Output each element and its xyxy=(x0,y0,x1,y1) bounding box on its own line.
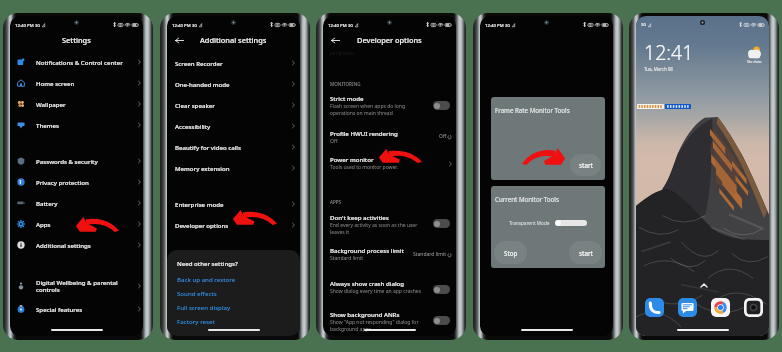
button[interactable]: Strict mode xyxy=(323,90,456,120)
staticText: Flash screen when apps do long operation… xyxy=(330,103,406,116)
staticText: Tue, March 08 xyxy=(644,66,673,72)
button[interactable]: start xyxy=(569,241,602,264)
staticText: Show "App not responding" dialog for bac… xyxy=(330,319,419,332)
staticText: Developer options xyxy=(357,35,422,45)
button[interactable]: Privacy protection xyxy=(10,171,143,192)
staticText: 12:40 PM xyxy=(328,22,347,28)
button[interactable]: Shortcut xyxy=(665,104,691,109)
staticText: Themes xyxy=(36,121,138,129)
button[interactable]: Back xyxy=(174,35,184,45)
staticText: Beautify for video calls xyxy=(175,143,292,151)
staticText: Additional settings xyxy=(200,35,267,45)
button[interactable]: Accessibility xyxy=(167,115,300,136)
button[interactable]: Themes xyxy=(10,114,143,135)
button[interactable]: Show background ANRs xyxy=(323,306,456,336)
button[interactable]: Power monitor xyxy=(323,151,456,175)
button[interactable]: Screen Recorder xyxy=(167,52,300,73)
staticText: start xyxy=(579,249,593,257)
staticText: End every activity as soon as the user l… xyxy=(330,222,418,235)
staticText: Show background ANRs xyxy=(330,310,400,318)
staticText: Developer options xyxy=(175,221,292,229)
staticText: Factory reset xyxy=(177,317,215,325)
staticText: Off xyxy=(330,138,338,145)
button[interactable]: Beautify for video calls xyxy=(167,136,300,157)
staticText: Transparent Mode xyxy=(509,220,550,226)
button[interactable]: Special features xyxy=(10,298,143,319)
staticText: peripherals xyxy=(330,50,355,56)
button[interactable]: Background process limit xyxy=(323,242,456,266)
staticText: start xyxy=(579,161,593,169)
button[interactable]: Transparent mode xyxy=(555,220,587,226)
button[interactable]: Back up and restore xyxy=(177,272,236,286)
staticText: Memory extension xyxy=(175,164,292,172)
button[interactable]: Sound effects xyxy=(177,286,217,300)
button[interactable]: Notifications & Control center xyxy=(10,51,143,72)
button[interactable]: Additional settings xyxy=(10,234,143,255)
button[interactable]: Back xyxy=(330,35,340,45)
staticText: 3G xyxy=(35,23,41,28)
staticText: 12:40 PM xyxy=(485,22,504,28)
staticText: Wallpaper xyxy=(36,100,138,108)
staticText: Enterprise mode xyxy=(175,200,292,208)
staticText: Frame Rate Monitor Tools xyxy=(495,106,570,114)
staticText: Sound effects xyxy=(177,289,217,297)
staticText: Stop xyxy=(504,249,518,257)
button[interactable]: Wallpaper xyxy=(10,93,143,114)
button[interactable]: Apps xyxy=(10,213,143,234)
button[interactable]: Show background ANRs xyxy=(433,316,450,325)
staticText: Settings xyxy=(62,35,91,45)
staticText: Back up and restore xyxy=(177,275,236,283)
button[interactable]: Battery xyxy=(10,192,143,213)
button[interactable]: Camera xyxy=(744,298,763,317)
staticText: Standard limit xyxy=(330,255,364,262)
staticText: 12:40 PM xyxy=(172,22,191,28)
staticText: Standard limit xyxy=(413,251,447,258)
staticText: Show dialog every time an app crashes xyxy=(330,288,422,295)
button[interactable]: One-handed mode xyxy=(167,73,300,94)
button[interactable]: start xyxy=(570,154,601,176)
button[interactable]: Chrome xyxy=(711,298,730,317)
staticText: APPS xyxy=(330,199,342,205)
button[interactable]: Factory reset xyxy=(177,314,215,328)
staticText: Digital Wellbeing & parental controls xyxy=(36,278,138,294)
button[interactable]: Always show crash dialog xyxy=(433,285,450,294)
button[interactable]: Home screen xyxy=(10,72,143,93)
button[interactable]: Phone xyxy=(645,298,664,317)
button[interactable]: Shortcut xyxy=(637,104,664,109)
button[interactable]: Passwords & security xyxy=(10,150,143,171)
button[interactable]: Enterprise mode xyxy=(167,193,300,214)
staticText: Background process limit xyxy=(330,246,404,254)
button[interactable]: Full screen display xyxy=(177,300,231,314)
button[interactable]: Always show crash dialog xyxy=(323,275,456,299)
staticText: Tools used to monitor power. xyxy=(330,164,398,171)
staticText: Always show crash dialog xyxy=(330,279,405,287)
staticText: Home screen xyxy=(36,79,138,87)
button[interactable]: Clear speaker xyxy=(167,94,300,115)
button[interactable]: Developer options xyxy=(167,214,300,235)
staticText: No data xyxy=(747,59,762,64)
staticText: Current Monitor Tools xyxy=(495,195,559,203)
staticText: Privacy protection xyxy=(36,178,138,186)
button[interactable]: Messages xyxy=(678,298,697,317)
staticText: 3G xyxy=(348,23,354,28)
staticText: Special features xyxy=(36,305,138,313)
staticText: Off xyxy=(439,133,447,140)
staticText: Don't keep activities xyxy=(330,213,389,221)
staticText: Profile HWUI rendering xyxy=(330,129,398,137)
staticText: 12:41 xyxy=(644,39,694,66)
button[interactable]: Memory extension xyxy=(167,157,300,178)
staticText: Accessibility xyxy=(175,122,292,130)
staticText: Need other settings? xyxy=(177,259,238,267)
staticText: Full screen display xyxy=(177,303,231,311)
button[interactable]: Don't keep activities xyxy=(433,219,450,228)
staticText: 12:40 PM xyxy=(15,22,34,28)
staticText: 3G xyxy=(505,23,511,28)
button[interactable]: Stop xyxy=(494,241,527,264)
button[interactable]: Don't keep activities xyxy=(323,209,456,239)
button[interactable]: Strict mode xyxy=(433,101,450,110)
button[interactable]: Digital Wellbeing & parental controls xyxy=(10,273,143,298)
staticText: Strict mode xyxy=(330,94,364,102)
staticText: Passwords & security xyxy=(36,157,138,165)
button[interactable]: Profile HWUI rendering xyxy=(323,125,456,149)
staticText: Screen Recorder xyxy=(175,59,292,67)
